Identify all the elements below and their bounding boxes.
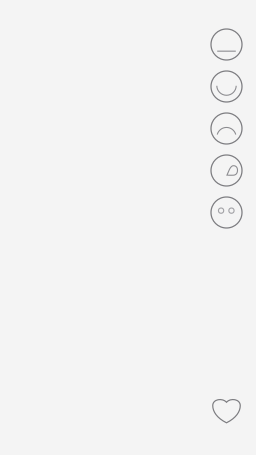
button[interactable]: Leaf <box>208 152 245 189</box>
button[interactable]: Sad <box>208 110 245 147</box>
button[interactable]: Eyes <box>208 194 245 231</box>
button[interactable]: Neutral <box>208 26 245 63</box>
button[interactable]: Favourite <box>209 395 243 426</box>
button[interactable]: Happy <box>208 68 245 105</box>
